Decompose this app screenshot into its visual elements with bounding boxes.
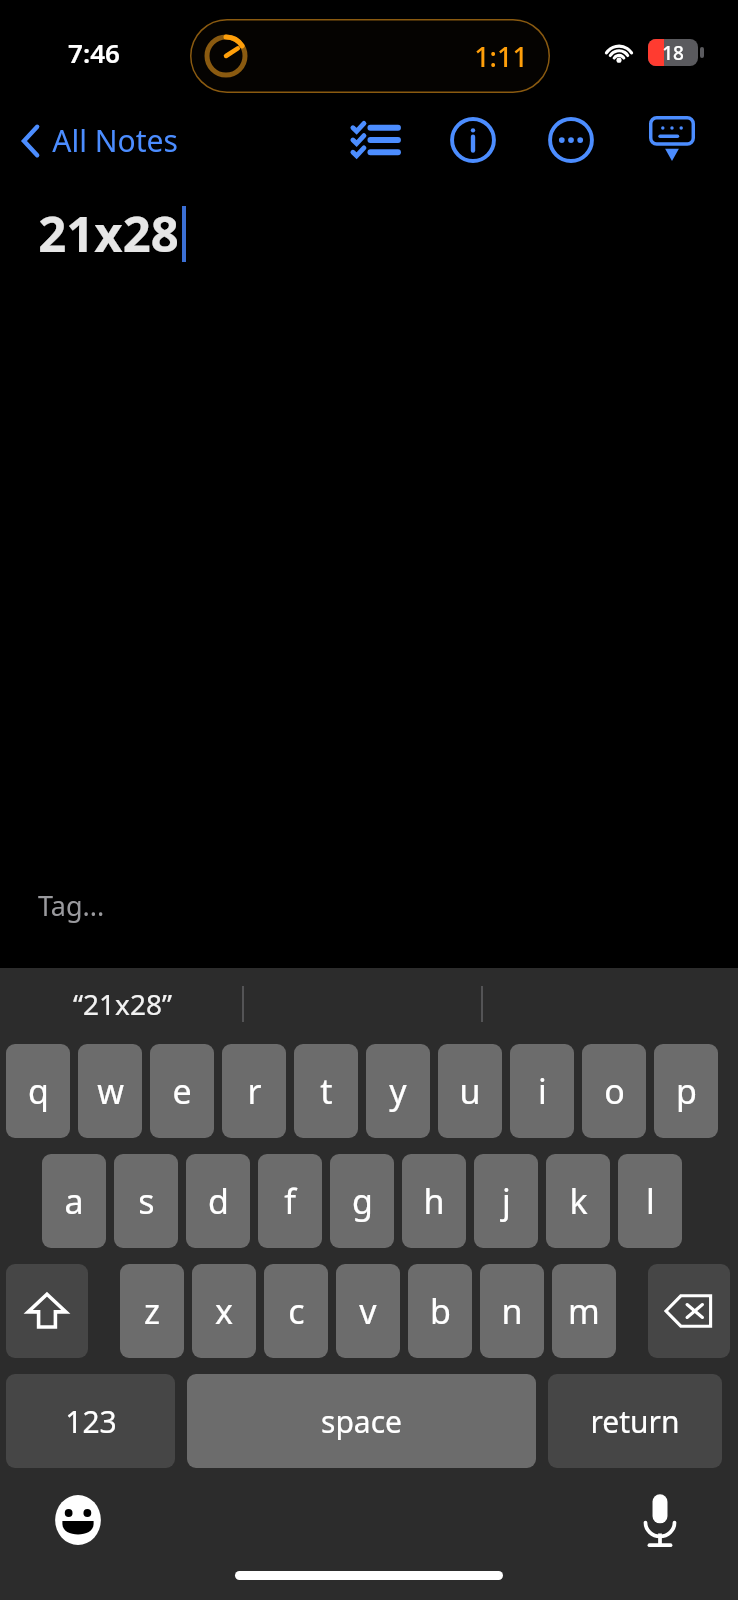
button[interactable]: All Notes xyxy=(16,116,182,165)
button[interactable]: r xyxy=(222,1044,286,1138)
staticText: 123 xyxy=(65,1401,117,1442)
button[interactable]: “21x28” xyxy=(73,985,172,1023)
staticText: u xyxy=(459,1068,481,1114)
button[interactable]: k xyxy=(546,1154,610,1248)
button[interactable]: Hide keyboard xyxy=(636,107,708,173)
button[interactable]: 21x28 xyxy=(0,176,738,968)
button[interactable]: p xyxy=(654,1044,718,1138)
button[interactable]: o xyxy=(582,1044,646,1138)
staticText: t xyxy=(320,1068,333,1114)
staticText: b xyxy=(430,1288,451,1334)
button[interactable]: s xyxy=(114,1154,178,1248)
button[interactable]: u xyxy=(438,1044,502,1138)
button[interactable]: key xyxy=(648,1264,730,1358)
button[interactable]: d xyxy=(186,1154,250,1248)
staticText: i xyxy=(538,1068,547,1114)
button[interactable]: b xyxy=(408,1264,472,1358)
staticText: n xyxy=(501,1288,523,1334)
staticText: r xyxy=(247,1068,262,1114)
staticText: g xyxy=(352,1178,373,1224)
staticText: space xyxy=(321,1401,402,1442)
staticText: d xyxy=(208,1178,229,1224)
button[interactable]: j xyxy=(474,1154,538,1248)
button[interactable]: x xyxy=(192,1264,256,1358)
staticText: m xyxy=(568,1288,600,1334)
button[interactable]: m xyxy=(552,1264,616,1358)
staticText: j xyxy=(502,1178,511,1224)
staticText: 1:11 xyxy=(474,38,528,75)
button[interactable]: f xyxy=(258,1154,322,1248)
button[interactable]: w xyxy=(78,1044,142,1138)
button[interactable]: More options xyxy=(536,107,606,173)
staticText: h xyxy=(423,1178,445,1224)
button[interactable]: return xyxy=(548,1374,722,1468)
staticText: 18 xyxy=(662,40,684,66)
staticText: l xyxy=(646,1178,655,1224)
button[interactable]: l xyxy=(618,1154,682,1248)
staticText: x xyxy=(215,1288,233,1334)
staticText: k xyxy=(569,1178,588,1224)
staticText: p xyxy=(676,1068,697,1114)
button[interactable]: space xyxy=(187,1374,536,1468)
button[interactable]: z xyxy=(120,1264,184,1358)
button[interactable]: y xyxy=(366,1044,430,1138)
staticText: Tag... xyxy=(38,887,105,924)
staticText: 7:46 xyxy=(68,35,120,70)
button[interactable]: key xyxy=(6,1264,88,1358)
button[interactable]: q xyxy=(6,1044,70,1138)
button[interactable]: c xyxy=(264,1264,328,1358)
button[interactable]: Info xyxy=(438,107,508,173)
button[interactable]: Checklist xyxy=(340,110,410,170)
staticText: o xyxy=(604,1068,625,1114)
staticText: a xyxy=(64,1178,84,1224)
staticText: w xyxy=(97,1068,124,1114)
staticText: v xyxy=(359,1288,377,1334)
button[interactable]: n xyxy=(480,1264,544,1358)
staticText: q xyxy=(28,1068,49,1114)
other: Delete xyxy=(665,1292,713,1330)
staticText: y xyxy=(389,1068,407,1114)
staticText: c xyxy=(288,1288,305,1334)
button[interactable]: t xyxy=(294,1044,358,1138)
staticText: f xyxy=(284,1178,296,1224)
staticText: s xyxy=(138,1178,155,1224)
staticText: z xyxy=(144,1288,160,1334)
button[interactable]: e xyxy=(150,1044,214,1138)
staticText: 21x28 xyxy=(38,200,179,267)
button[interactable]: Emoji xyxy=(40,1482,116,1558)
staticText: return xyxy=(590,1401,680,1442)
button[interactable]: v xyxy=(336,1264,400,1358)
staticText: All Notes xyxy=(52,120,178,161)
button[interactable]: Dictation xyxy=(622,1482,698,1558)
button[interactable]: 123 xyxy=(6,1374,175,1468)
other: Shift xyxy=(26,1290,68,1332)
button[interactable]: g xyxy=(330,1154,394,1248)
staticText: e xyxy=(172,1068,192,1114)
button[interactable]: h xyxy=(402,1154,466,1248)
button[interactable]: i xyxy=(510,1044,574,1138)
button[interactable]: a xyxy=(42,1154,106,1248)
